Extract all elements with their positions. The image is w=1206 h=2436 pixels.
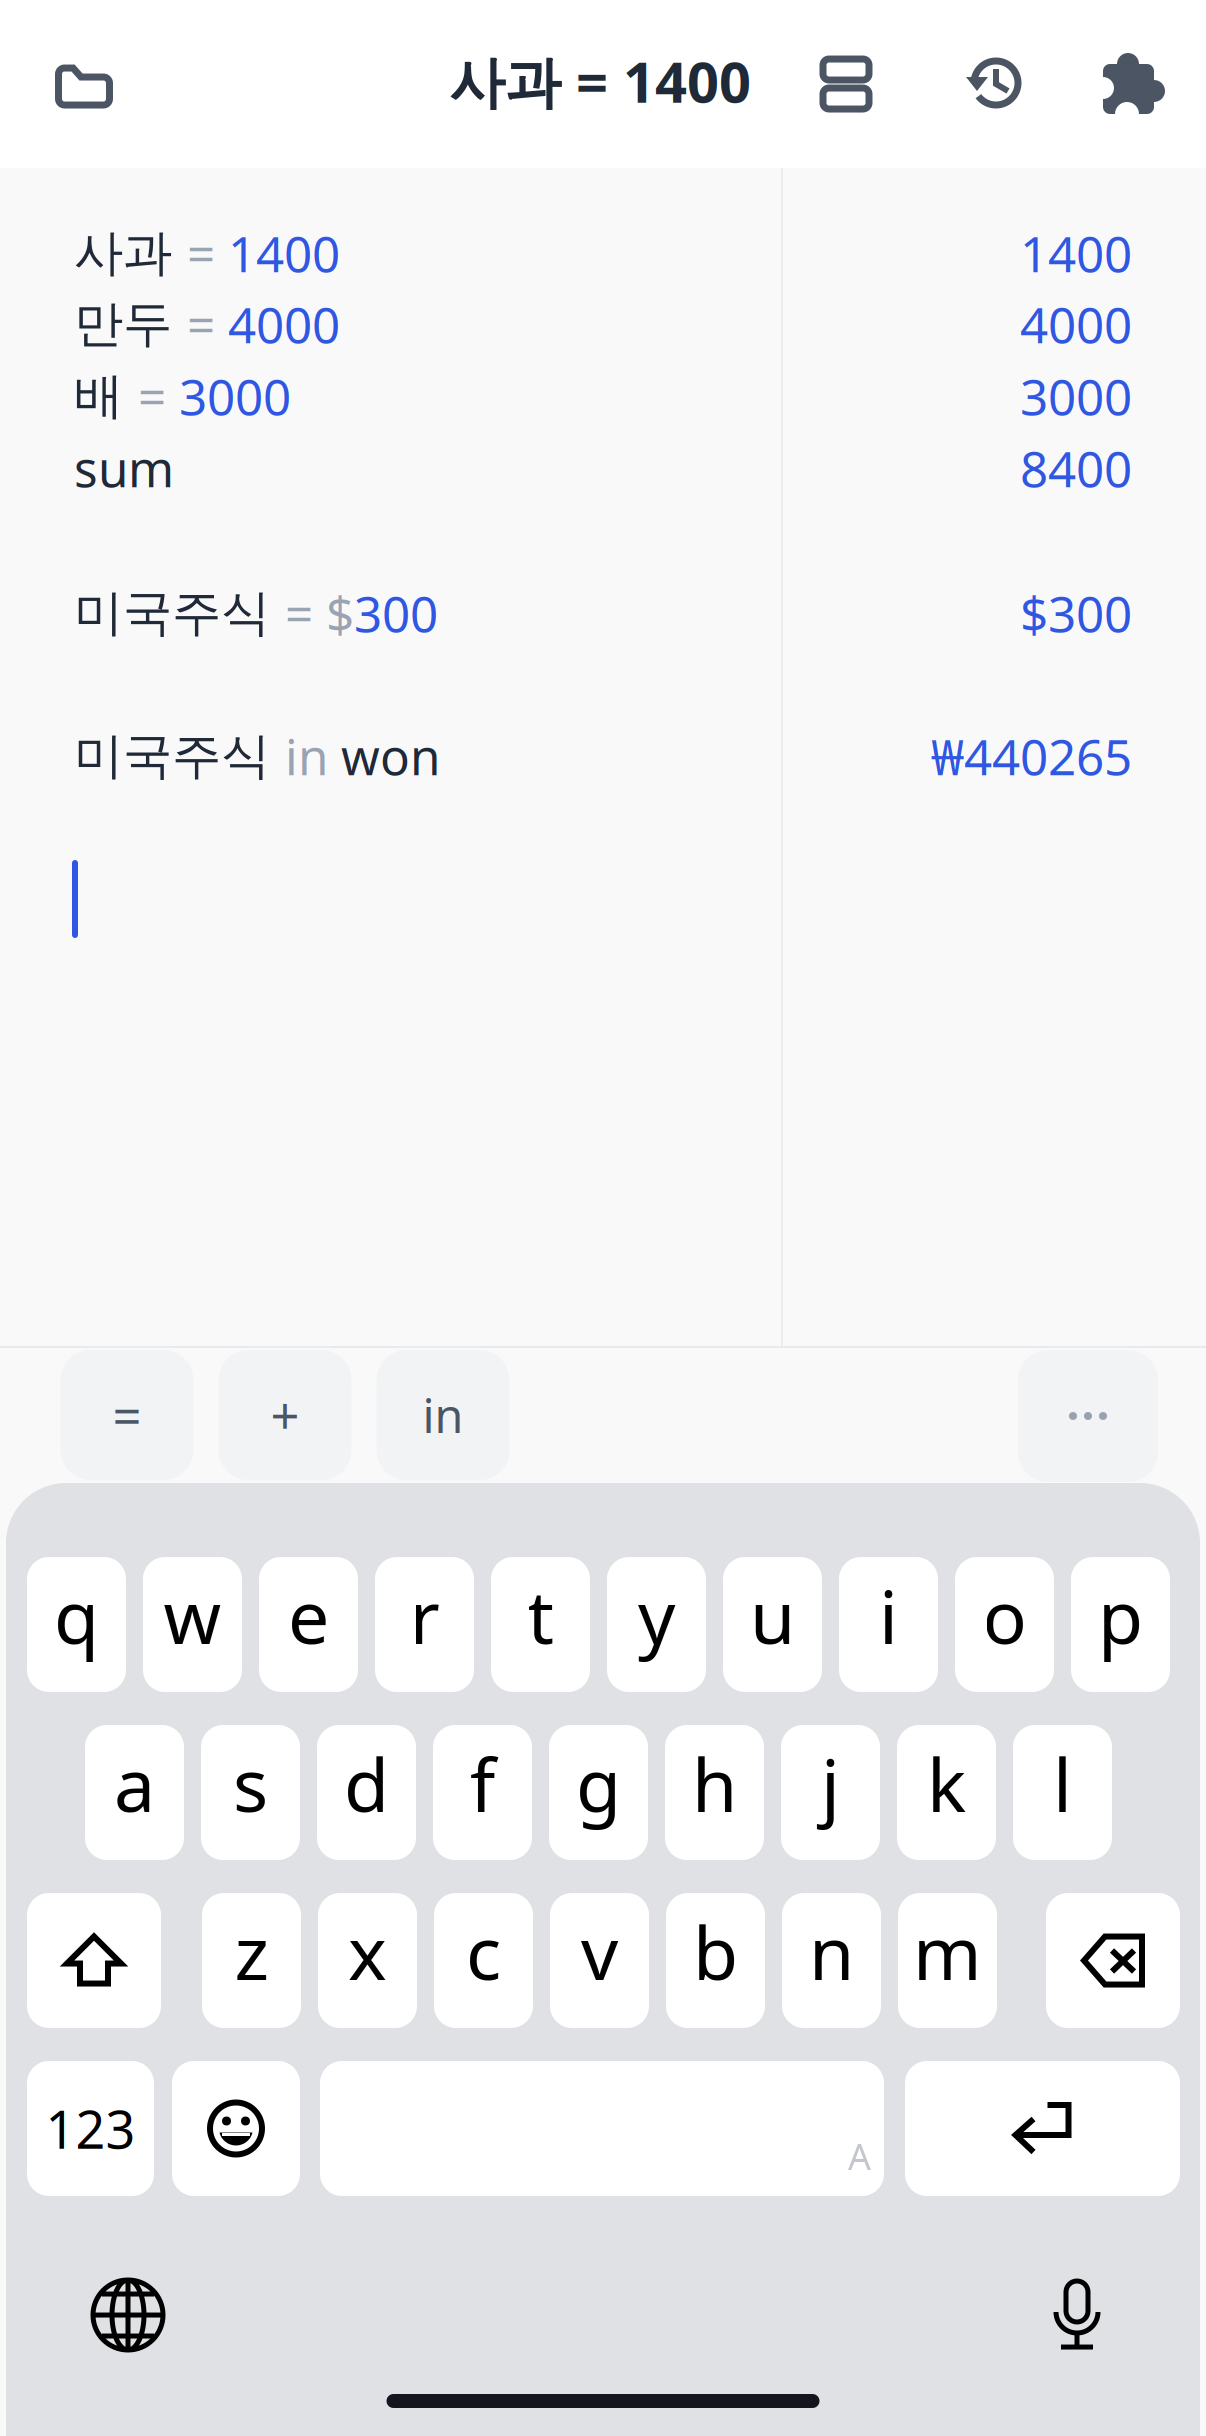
staticText: l — [1053, 1735, 1072, 1832]
staticText: p — [1098, 1567, 1143, 1664]
staticText: q — [54, 1567, 99, 1664]
staticText: = — [285, 580, 326, 646]
staticText: 8400 — [1020, 435, 1132, 501]
staticText: 3000 — [179, 363, 291, 429]
staticText: 배 — [74, 366, 138, 426]
staticText: u — [750, 1567, 795, 1664]
button[interactable]: f — [433, 1725, 532, 1860]
button[interactable]: a — [85, 1725, 184, 1860]
button[interactable]: s — [201, 1725, 300, 1860]
staticText: sum — [74, 435, 174, 501]
staticText: s — [233, 1735, 268, 1832]
staticText: $300 — [1020, 580, 1132, 646]
staticText: k — [927, 1735, 966, 1832]
staticText: o — [982, 1567, 1026, 1664]
button[interactable]: p — [1071, 1557, 1170, 1692]
button[interactable]: b — [666, 1893, 765, 2028]
button[interactable]: in — [376, 1350, 509, 1480]
staticText: 123 — [45, 2094, 135, 2163]
staticText: in — [422, 1384, 463, 1446]
button[interactable]: History — [964, 56, 1020, 112]
button[interactable]: t — [491, 1557, 590, 1692]
button[interactable]: = — [60, 1350, 193, 1480]
staticText: r — [409, 1567, 439, 1664]
staticText: i — [879, 1567, 898, 1664]
button[interactable]: Delete — [1046, 1893, 1180, 2028]
staticText: A — [848, 2132, 871, 2180]
button[interactable]: v — [550, 1893, 649, 2028]
button[interactable]: d — [317, 1725, 416, 1860]
button[interactable]: i — [839, 1557, 938, 1692]
staticText: ₩440265 — [931, 723, 1132, 789]
staticText: 3000 — [1020, 363, 1132, 429]
staticText: 만두 — [74, 294, 187, 354]
button[interactable]: r — [375, 1557, 474, 1692]
button[interactable]: n — [782, 1893, 881, 2028]
staticText: j — [821, 1735, 840, 1832]
button[interactable]: y — [607, 1557, 706, 1692]
staticText: m — [913, 1903, 982, 2000]
staticText: z — [234, 1903, 268, 2000]
staticText: = — [187, 220, 228, 286]
staticText: f — [470, 1735, 495, 1832]
button[interactable]: g — [549, 1725, 648, 1860]
button[interactable]: More — [1018, 1350, 1158, 1482]
staticText: $ — [326, 580, 354, 646]
staticText: = — [187, 291, 228, 357]
button[interactable]: Documents — [55, 59, 113, 109]
staticText: w — [163, 1567, 221, 1664]
button[interactable]: Shift — [27, 1893, 161, 2028]
button[interactable]: Dictate — [1052, 2276, 1104, 2354]
button[interactable]: e — [259, 1557, 358, 1692]
staticText: 사과 = 1400 — [449, 44, 751, 118]
button[interactable]: u — [723, 1557, 822, 1692]
button[interactable]: o — [955, 1557, 1054, 1692]
staticText: b — [693, 1903, 738, 2000]
button[interactable]: Next keyboard — [90, 2277, 166, 2353]
staticText: won — [341, 723, 440, 789]
staticText: 1400 — [228, 220, 340, 286]
staticText: a — [114, 1735, 155, 1832]
staticText: v — [581, 1903, 618, 2000]
staticText: g — [576, 1735, 621, 1832]
button[interactable]: c — [434, 1893, 533, 2028]
button[interactable]: l — [1013, 1725, 1112, 1860]
button[interactable]: j — [781, 1725, 880, 1860]
staticText: 1400 — [1020, 220, 1132, 286]
button[interactable]: q — [27, 1557, 126, 1692]
button[interactable]: m — [898, 1893, 997, 2028]
button[interactable]: + — [218, 1350, 351, 1480]
button[interactable]: h — [665, 1725, 764, 1860]
button[interactable]: Emoji — [172, 2061, 300, 2196]
button[interactable]: x — [318, 1893, 417, 2028]
button[interactable]: Extensions — [1102, 51, 1166, 115]
staticText: 300 — [354, 580, 438, 646]
button[interactable]: k — [897, 1725, 996, 1860]
button[interactable]: space — [320, 2061, 884, 2196]
staticText: x — [348, 1903, 387, 2000]
button[interactable]: w — [143, 1557, 242, 1692]
staticText: d — [344, 1735, 389, 1832]
staticText: 미국주식 — [74, 726, 285, 786]
button[interactable]: Return — [905, 2061, 1180, 2196]
staticText: 4000 — [1020, 291, 1132, 357]
staticText: y — [638, 1567, 675, 1664]
staticText: t — [527, 1567, 553, 1664]
button[interactable]: Layout — [819, 55, 872, 112]
staticText: in — [285, 723, 341, 789]
staticText: c — [466, 1903, 501, 2000]
staticText: h — [692, 1735, 737, 1832]
staticText: 미국주식 — [74, 583, 285, 643]
staticText: n — [809, 1903, 854, 2000]
staticText: + — [270, 1381, 299, 1449]
staticText: 사과 — [74, 223, 187, 283]
button[interactable]: 123 — [27, 2061, 154, 2196]
staticText: = — [112, 1381, 141, 1449]
staticText: e — [288, 1567, 329, 1664]
staticText: 4000 — [228, 291, 340, 357]
button[interactable]: z — [202, 1893, 301, 2028]
staticText: = — [138, 363, 179, 429]
